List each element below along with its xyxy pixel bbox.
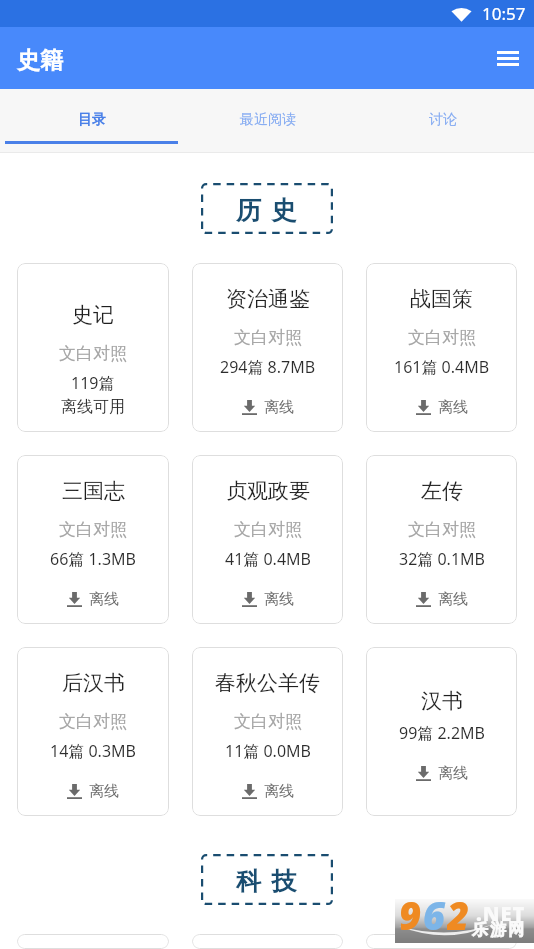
- staticText: 14篇 0.3MB: [50, 740, 136, 762]
- staticText: 战国策: [410, 286, 473, 312]
- staticText: 离线: [438, 764, 468, 783]
- staticText: 2: [447, 889, 471, 933]
- staticText: 最近阅读: [240, 111, 296, 129]
- staticText: 41篇 0.4MB: [225, 548, 311, 570]
- button[interactable]: 后汉书: [17, 647, 169, 816]
- staticText: 119篇: [71, 372, 115, 394]
- button[interactable]: 战国策: [366, 263, 517, 432]
- staticText: 文白对照: [234, 519, 302, 540]
- staticText: 目录: [78, 111, 106, 129]
- button[interactable]: 史记: [17, 263, 169, 432]
- staticText: 资治通鉴: [226, 286, 310, 312]
- staticText: 文白对照: [59, 519, 127, 540]
- staticText: 文白对照: [59, 711, 127, 732]
- staticText: 10:57: [482, 2, 526, 25]
- button[interactable]: Menu: [484, 34, 532, 82]
- button[interactable]: [17, 934, 169, 949]
- button[interactable]: 汉书: [366, 647, 517, 816]
- button[interactable]: 讨论: [355, 89, 530, 153]
- other: Wi-Fi signal: [451, 6, 472, 22]
- staticText: 9: [399, 889, 423, 933]
- button[interactable]: [366, 934, 517, 949]
- staticText: 文白对照: [408, 327, 476, 348]
- button[interactable]: [192, 934, 343, 949]
- button[interactable]: 三国志: [17, 455, 169, 624]
- staticText: 11篇 0.0MB: [225, 740, 311, 762]
- staticText: 161篇 0.4MB: [394, 356, 490, 378]
- staticText: 离线: [438, 590, 468, 609]
- button[interactable]: 离线: [236, 782, 300, 801]
- staticText: 文白对照: [408, 519, 476, 540]
- button[interactable]: 春秋公羊传: [192, 647, 343, 816]
- button[interactable]: 离线: [410, 398, 474, 417]
- staticText: 三国志: [62, 478, 125, 504]
- staticText: 32篇 0.1MB: [399, 548, 485, 570]
- button[interactable]: 最近阅读: [180, 89, 355, 153]
- button[interactable]: 离线: [236, 398, 300, 417]
- staticText: 离线: [89, 590, 119, 609]
- staticText: 贞观政要: [226, 478, 310, 504]
- staticText: 66篇 1.3MB: [50, 548, 136, 570]
- staticText: 离线: [438, 398, 468, 417]
- staticText: 科 技: [236, 863, 299, 897]
- button[interactable]: 资治通鉴: [192, 263, 343, 432]
- staticText: 离线: [89, 782, 119, 801]
- staticText: 历 史: [236, 192, 299, 226]
- button[interactable]: 离线: [236, 590, 300, 609]
- staticText: 文白对照: [59, 343, 127, 364]
- staticText: 后汉书: [62, 670, 125, 696]
- staticText: 史籍: [17, 46, 63, 75]
- staticText: 6: [423, 889, 447, 933]
- button[interactable]: 离线: [61, 590, 125, 609]
- staticText: 乐游网: [471, 920, 525, 940]
- button[interactable]: 离线: [61, 782, 125, 801]
- button[interactable]: 离线: [410, 590, 474, 609]
- staticText: 文白对照: [234, 711, 302, 732]
- staticText: 294篇 8.7MB: [220, 356, 316, 378]
- staticText: 讨论: [429, 111, 457, 129]
- staticText: 离线可用: [61, 397, 125, 417]
- staticText: 春秋公羊传: [215, 670, 320, 696]
- staticText: 文白对照: [234, 327, 302, 348]
- button[interactable]: 目录: [4, 89, 180, 153]
- button[interactable]: 左传: [366, 455, 517, 624]
- staticText: 史记: [72, 302, 114, 328]
- staticText: 离线: [264, 398, 294, 417]
- staticText: .NET: [476, 900, 526, 927]
- staticText: 99篇 2.2MB: [399, 722, 485, 744]
- button[interactable]: 贞观政要: [192, 455, 343, 624]
- staticText: 左传: [421, 478, 463, 504]
- button[interactable]: 离线: [410, 764, 474, 783]
- staticText: 离线: [264, 782, 294, 801]
- staticText: 离线: [264, 590, 294, 609]
- staticText: 汉书: [421, 688, 463, 714]
